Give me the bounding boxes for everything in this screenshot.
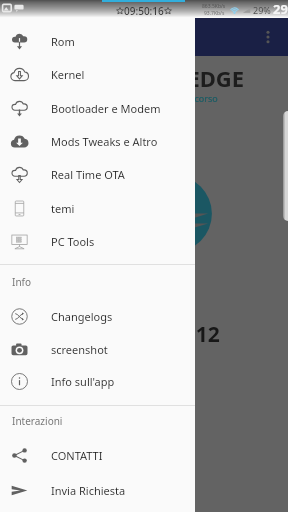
- staticText: Caricamento in corso: [128, 92, 218, 104]
- button[interactable]: CONTATTI: [0, 439, 195, 472]
- staticText: Versione 12: [99, 320, 220, 349]
- staticText: Bootloader e Modem: [51, 101, 161, 116]
- button[interactable]: Changelogs: [0, 300, 195, 333]
- staticText: Mods Tweaks e Altro: [51, 134, 158, 149]
- button[interactable]: Kernel: [0, 58, 195, 91]
- button[interactable]: Info sull'app: [0, 365, 195, 398]
- staticText: 93.7Kb/s: [204, 10, 225, 17]
- button[interactable]: screenshot: [0, 333, 195, 366]
- button[interactable]: temi: [0, 192, 195, 225]
- staticText: Real Time OTA: [51, 167, 125, 182]
- button[interactable]: Rom: [0, 25, 195, 58]
- staticText: Rom: [51, 34, 75, 49]
- staticText: Changelogs: [51, 309, 113, 324]
- button[interactable]: Bootloader e Modem: [0, 92, 195, 125]
- button[interactable]: Invia Richiesta: [0, 474, 195, 507]
- staticText: 863.5Kb/s: [202, 3, 226, 10]
- button[interactable]: More options: [254, 23, 282, 51]
- staticText: temi: [51, 201, 75, 216]
- staticText: SAMSUNG EDGE: [71, 63, 245, 93]
- staticText: 29%: [253, 4, 271, 16]
- staticText: Info sull'app: [51, 374, 115, 389]
- staticText: Kernel: [51, 67, 85, 82]
- staticText: CONTATTI: [51, 448, 103, 463]
- button[interactable]: Mods Tweaks e Altro: [0, 125, 195, 158]
- staticText: 29: [273, 0, 288, 18]
- staticText: 09:50:16: [124, 4, 164, 18]
- staticText: Info: [12, 275, 32, 289]
- staticText: PC Tools: [51, 234, 95, 249]
- staticText: Invia Richiesta: [51, 483, 126, 498]
- staticText: Interazioni: [12, 414, 63, 428]
- button[interactable]: PC Tools: [0, 225, 195, 258]
- button[interactable]: Real Time OTA: [0, 158, 195, 191]
- staticText: screenshot: [51, 342, 108, 357]
